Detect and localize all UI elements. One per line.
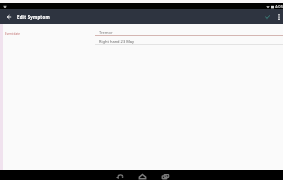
staticText: Right hand 23 May xyxy=(99,39,135,44)
button[interactable]: Save xyxy=(261,9,273,24)
button[interactable]: Back xyxy=(113,171,125,180)
staticText: Edit Symptom xyxy=(17,14,50,20)
button[interactable]: More options xyxy=(273,9,283,24)
button[interactable]: Home xyxy=(136,171,148,180)
staticText: Tremor xyxy=(99,30,113,35)
button[interactable]: Back xyxy=(0,9,17,24)
staticText: Event date xyxy=(5,32,20,36)
button[interactable]: Tremor xyxy=(95,26,283,36)
button[interactable]: Right hand 23 May xyxy=(95,36,283,45)
button[interactable]: Recents xyxy=(159,171,171,180)
staticText: 4:05 xyxy=(275,4,283,9)
